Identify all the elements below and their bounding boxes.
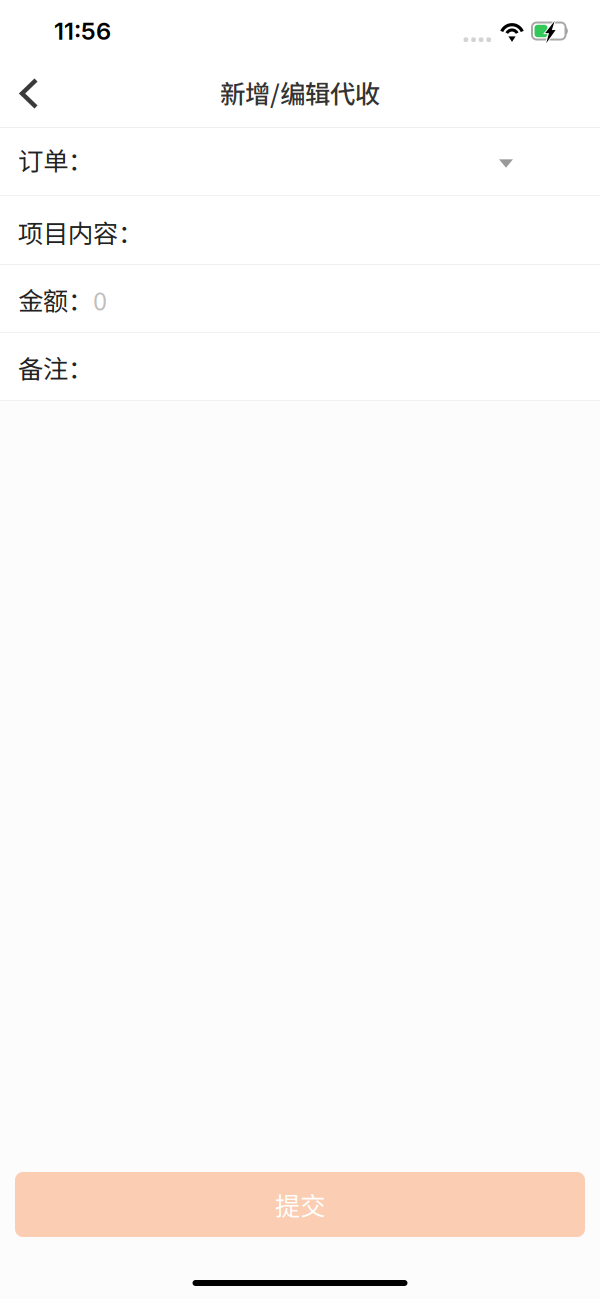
button[interactable]: 提交 xyxy=(15,1172,585,1237)
staticText: 提交 xyxy=(275,1186,325,1223)
staticText: 金额： xyxy=(18,281,93,318)
staticText: 订单： xyxy=(18,141,93,178)
staticText: 11:56 xyxy=(54,16,111,45)
button[interactable]: 备注： xyxy=(0,333,600,401)
button[interactable]: Back xyxy=(0,62,58,127)
button[interactable]: 项目内容： xyxy=(0,196,600,265)
staticText: 0 xyxy=(93,281,107,318)
staticText: 项目内容： xyxy=(18,214,143,250)
button[interactable]: 金额： xyxy=(0,265,600,333)
button[interactable]: 订单： xyxy=(0,128,600,196)
staticText: 备注： xyxy=(18,349,93,386)
staticText: 新增/编辑代收 xyxy=(220,74,380,111)
